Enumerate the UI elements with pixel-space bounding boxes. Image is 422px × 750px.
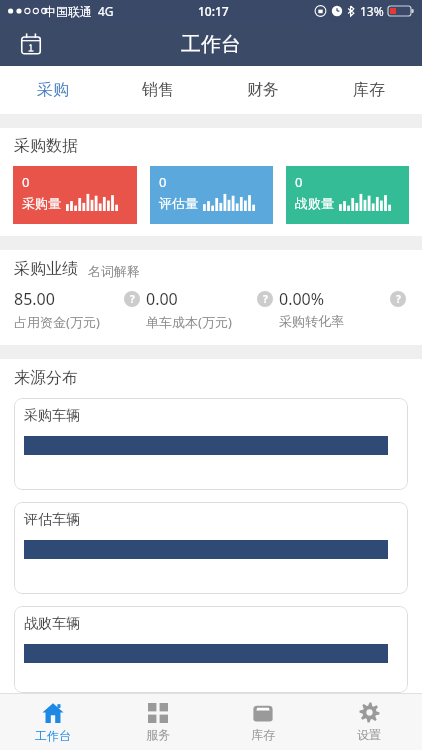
staticText: 评估量 [159,195,198,211]
button[interactable]: 库存 [316,66,422,114]
staticText: 13% [360,3,384,19]
staticText: 0.00% [279,288,325,310]
staticText: 0 [295,173,303,191]
staticText: 服务 [146,727,170,742]
staticText: 4G [98,3,114,19]
button[interactable]: Help [257,291,273,307]
staticText: 10:17 [198,3,229,19]
staticText: 库存 [353,80,385,100]
staticText: 战败量 [295,195,334,211]
button[interactable]: 库存 [210,694,316,750]
staticText: 采购业绩 [14,259,78,279]
staticText: 占用资金(万元) [14,313,100,331]
staticText: 工作台 [181,32,241,57]
staticText: 单车成本(万元) [146,313,232,331]
staticText: 采购数据 [14,136,78,156]
button[interactable]: 销售 [105,66,210,114]
button[interactable]: 财务 [210,66,316,114]
staticText: 85.00 [14,288,55,310]
button[interactable]: Help [124,291,140,307]
staticText: ? [263,292,268,306]
button[interactable]: 采购 [0,66,105,114]
button[interactable]: 服务 [105,694,210,750]
staticText: 销售 [142,80,174,100]
staticText: 设置 [357,727,381,742]
button[interactable]: 采购车辆 [14,398,408,490]
staticText: 中国联通 [44,4,92,19]
staticText: 来源分布 [14,368,78,388]
staticText: 名词解释 [88,263,140,279]
staticText: 财务 [247,80,279,100]
button[interactable]: 0 [286,166,409,224]
staticText: 库存 [251,727,275,742]
staticText: 采购转化率 [279,313,344,329]
staticText: 采购车辆 [24,407,80,425]
button[interactable]: 战败车辆 [14,606,408,693]
staticText: 0 [159,173,167,191]
staticText: ? [396,292,401,306]
staticText: 采购量 [22,195,61,211]
staticText: 工作台 [35,728,71,743]
button[interactable]: 设置 [316,694,422,750]
staticText: 采购 [37,80,69,100]
staticText: 战败车辆 [24,615,80,633]
button[interactable]: 0 [13,166,137,224]
button[interactable]: 名词解释 [88,263,140,279]
button[interactable]: 0 [150,166,273,224]
staticText: ? [130,292,135,306]
staticText: 0.00 [146,288,178,310]
staticText: 评估车辆 [24,511,80,529]
button[interactable]: 评估车辆 [14,502,408,594]
button[interactable]: Calendar [14,27,48,61]
button[interactable]: 工作台 [0,694,105,750]
button[interactable]: Help [390,291,406,307]
staticText: 0 [22,173,30,191]
